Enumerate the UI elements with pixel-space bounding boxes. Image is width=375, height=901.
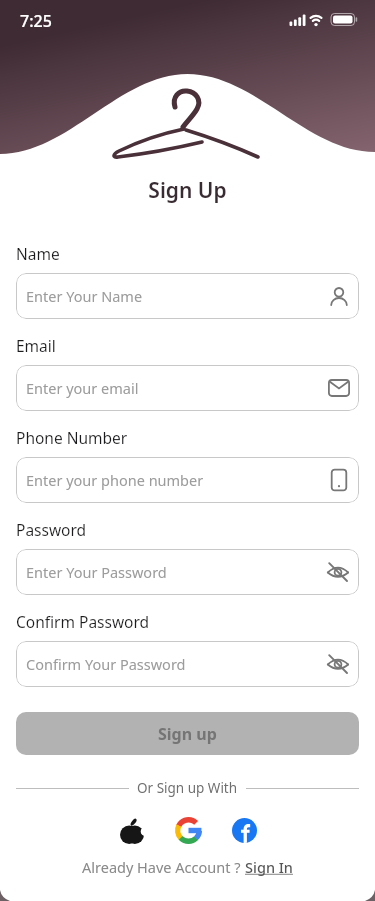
staticText: Sign up: [158, 723, 217, 745]
staticText: Enter Your Name: [26, 286, 143, 306]
button[interactable]: [175, 817, 202, 844]
button[interactable]: Enter Your Name: [16, 273, 359, 319]
button[interactable]: Enter your phone number: [16, 457, 359, 503]
staticText: Name: [16, 243, 60, 264]
staticText: Password: [16, 519, 87, 540]
staticText: Or Sign up With: [137, 779, 238, 797]
button[interactable]: Enter Your Password: [16, 549, 359, 595]
staticText: 7:25: [20, 10, 52, 32]
staticText: Confirm Your Password: [26, 654, 186, 674]
staticText: Enter Your Password: [26, 562, 167, 582]
button[interactable]: [232, 818, 257, 843]
button[interactable]: Enter your email: [16, 365, 359, 411]
staticText: Email: [16, 335, 56, 356]
staticText: Sign Up: [0, 176, 375, 205]
staticText: Already Have Account ?: [82, 857, 245, 877]
button[interactable]: Sign In: [245, 857, 293, 877]
button[interactable]: [119, 818, 145, 844]
staticText: Enter your phone number: [26, 470, 204, 490]
button[interactable]: Sign up: [16, 712, 359, 755]
staticText: Confirm Password: [16, 611, 150, 632]
staticText: Enter your email: [26, 378, 139, 398]
button[interactable]: Confirm Your Password: [16, 641, 359, 687]
staticText: Phone Number: [16, 427, 128, 448]
